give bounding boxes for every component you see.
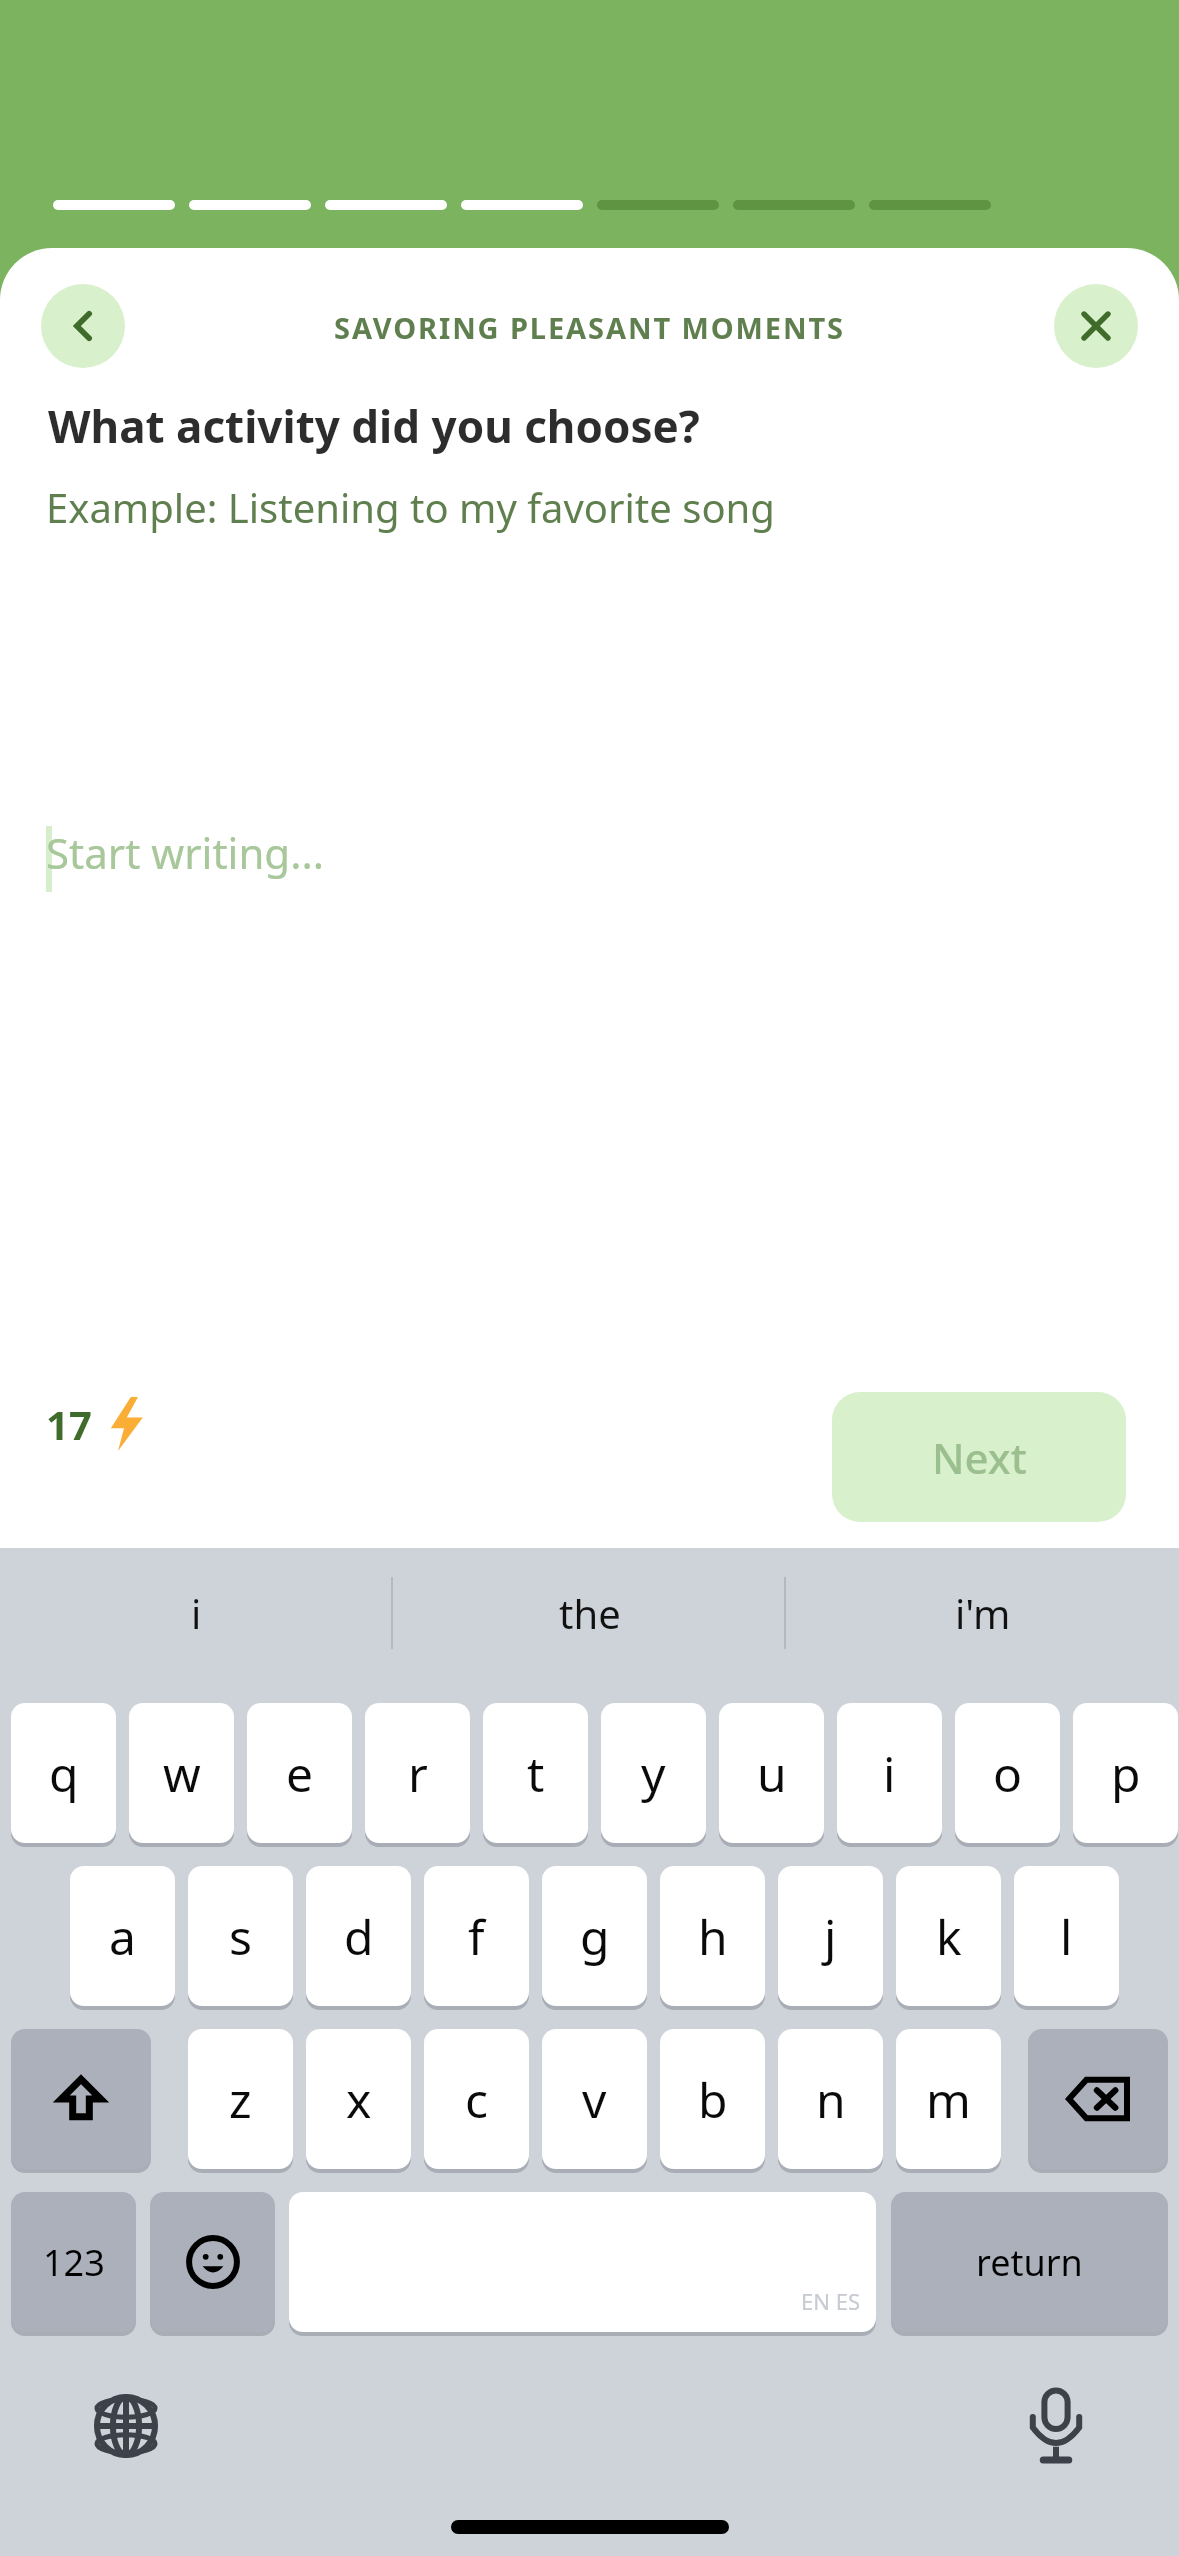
staticText: a xyxy=(109,1904,136,1969)
button[interactable]: Start writing... xyxy=(46,808,1179,908)
staticText: y xyxy=(641,1741,666,1806)
button[interactable]: u xyxy=(719,1703,824,1843)
staticText: t xyxy=(527,1741,545,1806)
staticText: l xyxy=(1060,1904,1073,1969)
button[interactable]: x xyxy=(306,2029,411,2169)
button[interactable]: y xyxy=(601,1703,706,1843)
staticText: Next xyxy=(932,1429,1027,1486)
button[interactable]: a xyxy=(70,1866,175,2006)
button[interactable]: z xyxy=(188,2029,293,2169)
button[interactable]: h xyxy=(660,1866,765,2006)
button[interactable]: i xyxy=(0,1548,393,1678)
button[interactable]: p xyxy=(1073,1703,1178,1843)
button[interactable]: f xyxy=(424,1866,529,2006)
button[interactable]: Space xyxy=(289,2192,876,2332)
button[interactable]: the xyxy=(393,1548,786,1678)
staticText: h xyxy=(698,1904,728,1969)
button[interactable]: k xyxy=(896,1866,1001,2006)
button[interactable]: r xyxy=(365,1703,470,1843)
button[interactable]: Shift xyxy=(11,2029,151,2169)
staticText: Start writing... xyxy=(46,824,324,881)
staticText: j xyxy=(824,1904,837,1969)
staticText: i xyxy=(191,1586,202,1640)
button[interactable]: t xyxy=(483,1703,588,1843)
staticText: f xyxy=(468,1904,485,1969)
button[interactable]: i xyxy=(837,1703,942,1843)
staticText: 123 xyxy=(43,2238,105,2287)
staticText: r xyxy=(408,1741,428,1806)
staticText: i xyxy=(883,1741,896,1806)
button[interactable]: Numbers xyxy=(11,2192,136,2332)
staticText: u xyxy=(757,1741,787,1806)
staticText: v xyxy=(582,2067,607,2132)
staticText: o xyxy=(993,1741,1023,1806)
staticText: 17 xyxy=(46,1397,92,1451)
button[interactable]: c xyxy=(424,2029,529,2169)
staticText: x xyxy=(346,2067,372,2132)
staticText: i'm xyxy=(955,1586,1011,1640)
button[interactable]: n xyxy=(778,2029,883,2169)
button[interactable]: Emoji xyxy=(150,2192,275,2332)
button[interactable]: i'm xyxy=(786,1548,1179,1678)
staticText: p xyxy=(1111,1741,1141,1806)
button[interactable]: Voice input xyxy=(1008,2378,1104,2474)
staticText: z xyxy=(229,2067,252,2132)
button[interactable]: g xyxy=(542,1866,647,2006)
button[interactable]: w xyxy=(129,1703,234,1843)
staticText: e xyxy=(286,1741,314,1806)
staticText: SAVORING PLEASANT MOMENTS xyxy=(334,308,845,347)
staticText: q xyxy=(49,1741,79,1806)
staticText: s xyxy=(229,1904,252,1969)
button[interactable]: s xyxy=(188,1866,293,2006)
button[interactable]: b xyxy=(660,2029,765,2169)
button[interactable]: d xyxy=(306,1866,411,2006)
button[interactable]: l xyxy=(1014,1866,1119,2006)
staticText: the xyxy=(559,1586,621,1640)
staticText: m xyxy=(926,2067,971,2132)
staticText: n xyxy=(816,2067,846,2132)
button[interactable]: Backspace xyxy=(1028,2029,1168,2169)
button[interactable]: e xyxy=(247,1703,352,1843)
button[interactable]: Change keyboard xyxy=(78,2378,174,2474)
staticText: c xyxy=(465,2067,489,2132)
staticText: k xyxy=(936,1904,962,1969)
staticText: b xyxy=(698,2067,728,2132)
button[interactable]: m xyxy=(896,2029,1001,2169)
button[interactable]: Next xyxy=(832,1392,1126,1522)
button[interactable]: j xyxy=(778,1866,883,2006)
staticText: Example: Listening to my favorite song xyxy=(46,480,775,534)
button[interactable]: Return xyxy=(891,2192,1168,2332)
button[interactable]: Back xyxy=(41,284,125,368)
button[interactable]: 17 xyxy=(46,1397,146,1451)
staticText: w xyxy=(163,1741,201,1806)
staticText: What activity did you choose? xyxy=(48,396,700,456)
button[interactable]: o xyxy=(955,1703,1060,1843)
button[interactable]: q xyxy=(11,1703,116,1843)
staticText: return xyxy=(976,2238,1083,2287)
button[interactable]: v xyxy=(542,2029,647,2169)
button[interactable]: Close xyxy=(1054,284,1138,368)
staticText: g xyxy=(580,1904,610,1969)
staticText: EN ES xyxy=(801,2286,860,2316)
staticText: d xyxy=(344,1904,374,1969)
